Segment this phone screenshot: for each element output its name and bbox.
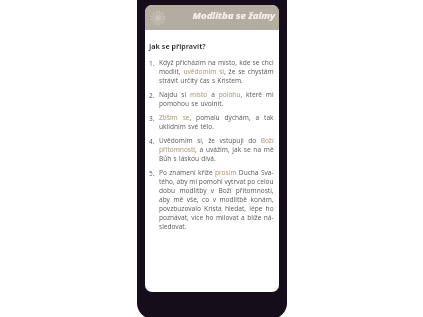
- staticText: 5.: [149, 169, 155, 178]
- staticText: 3.: [149, 114, 155, 123]
- staticText: 4.: [149, 137, 155, 146]
- staticText: 2.: [149, 91, 155, 100]
- staticText: 1.: [149, 59, 155, 68]
- staticText: Jak se připravit?: [149, 41, 206, 51]
- staticText: Modlitba se žalmy: [166, 9, 275, 22]
- button[interactable]: Modlitba se žalmy: [145, 5, 279, 30]
